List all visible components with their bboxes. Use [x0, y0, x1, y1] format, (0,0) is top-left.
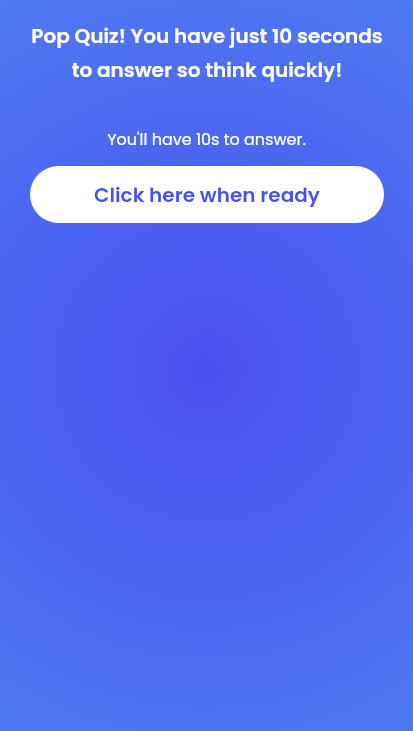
staticText: You'll have 10s to answer.: [107, 128, 306, 150]
button[interactable]: Click here when ready: [30, 166, 384, 223]
staticText: Pop Quiz! You have just 10 seconds to an…: [27, 22, 387, 84]
staticText: Click here when ready: [94, 181, 320, 209]
